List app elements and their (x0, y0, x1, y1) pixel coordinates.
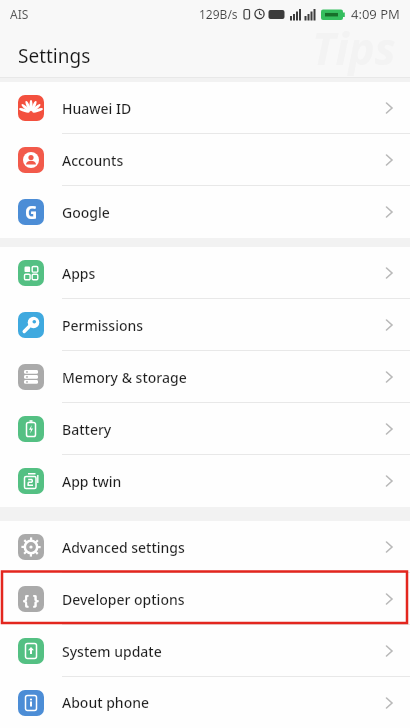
button[interactable]: Accounts (0, 134, 410, 186)
button[interactable]: Battery (0, 403, 410, 455)
staticText: 129B/s (199, 6, 238, 22)
staticText: System update (62, 642, 162, 661)
button[interactable]: App twin (0, 455, 410, 507)
button[interactable]: G (0, 186, 410, 238)
button[interactable]: Huawei ID (0, 82, 410, 134)
staticText: App twin (62, 472, 122, 491)
staticText: Developer options (62, 590, 185, 609)
button[interactable]: Memory & storage (0, 351, 410, 403)
staticText: { } (23, 589, 39, 609)
staticText: Settings (18, 43, 91, 69)
staticText: Accounts (62, 151, 124, 170)
button[interactable]: Apps (0, 247, 410, 299)
staticText: 4:09 PM (351, 5, 400, 23)
staticText: Tips (312, 18, 396, 78)
button[interactable]: Advanced settings (0, 521, 410, 573)
staticText: Battery (62, 420, 112, 439)
button[interactable]: System update (0, 625, 410, 677)
staticText: Permissions (62, 316, 144, 335)
staticText: About phone (62, 693, 150, 712)
staticText: Google (62, 203, 110, 222)
staticText: Advanced settings (62, 538, 185, 557)
staticText: AIS (10, 6, 29, 22)
staticText: Huawei ID (62, 99, 132, 118)
staticText: Apps (62, 264, 96, 283)
button[interactable]: { } (0, 573, 410, 625)
staticText: Memory & storage (62, 368, 187, 387)
button[interactable]: Permissions (0, 299, 410, 351)
button[interactable]: About phone (0, 677, 410, 728)
staticText: G (25, 201, 38, 224)
